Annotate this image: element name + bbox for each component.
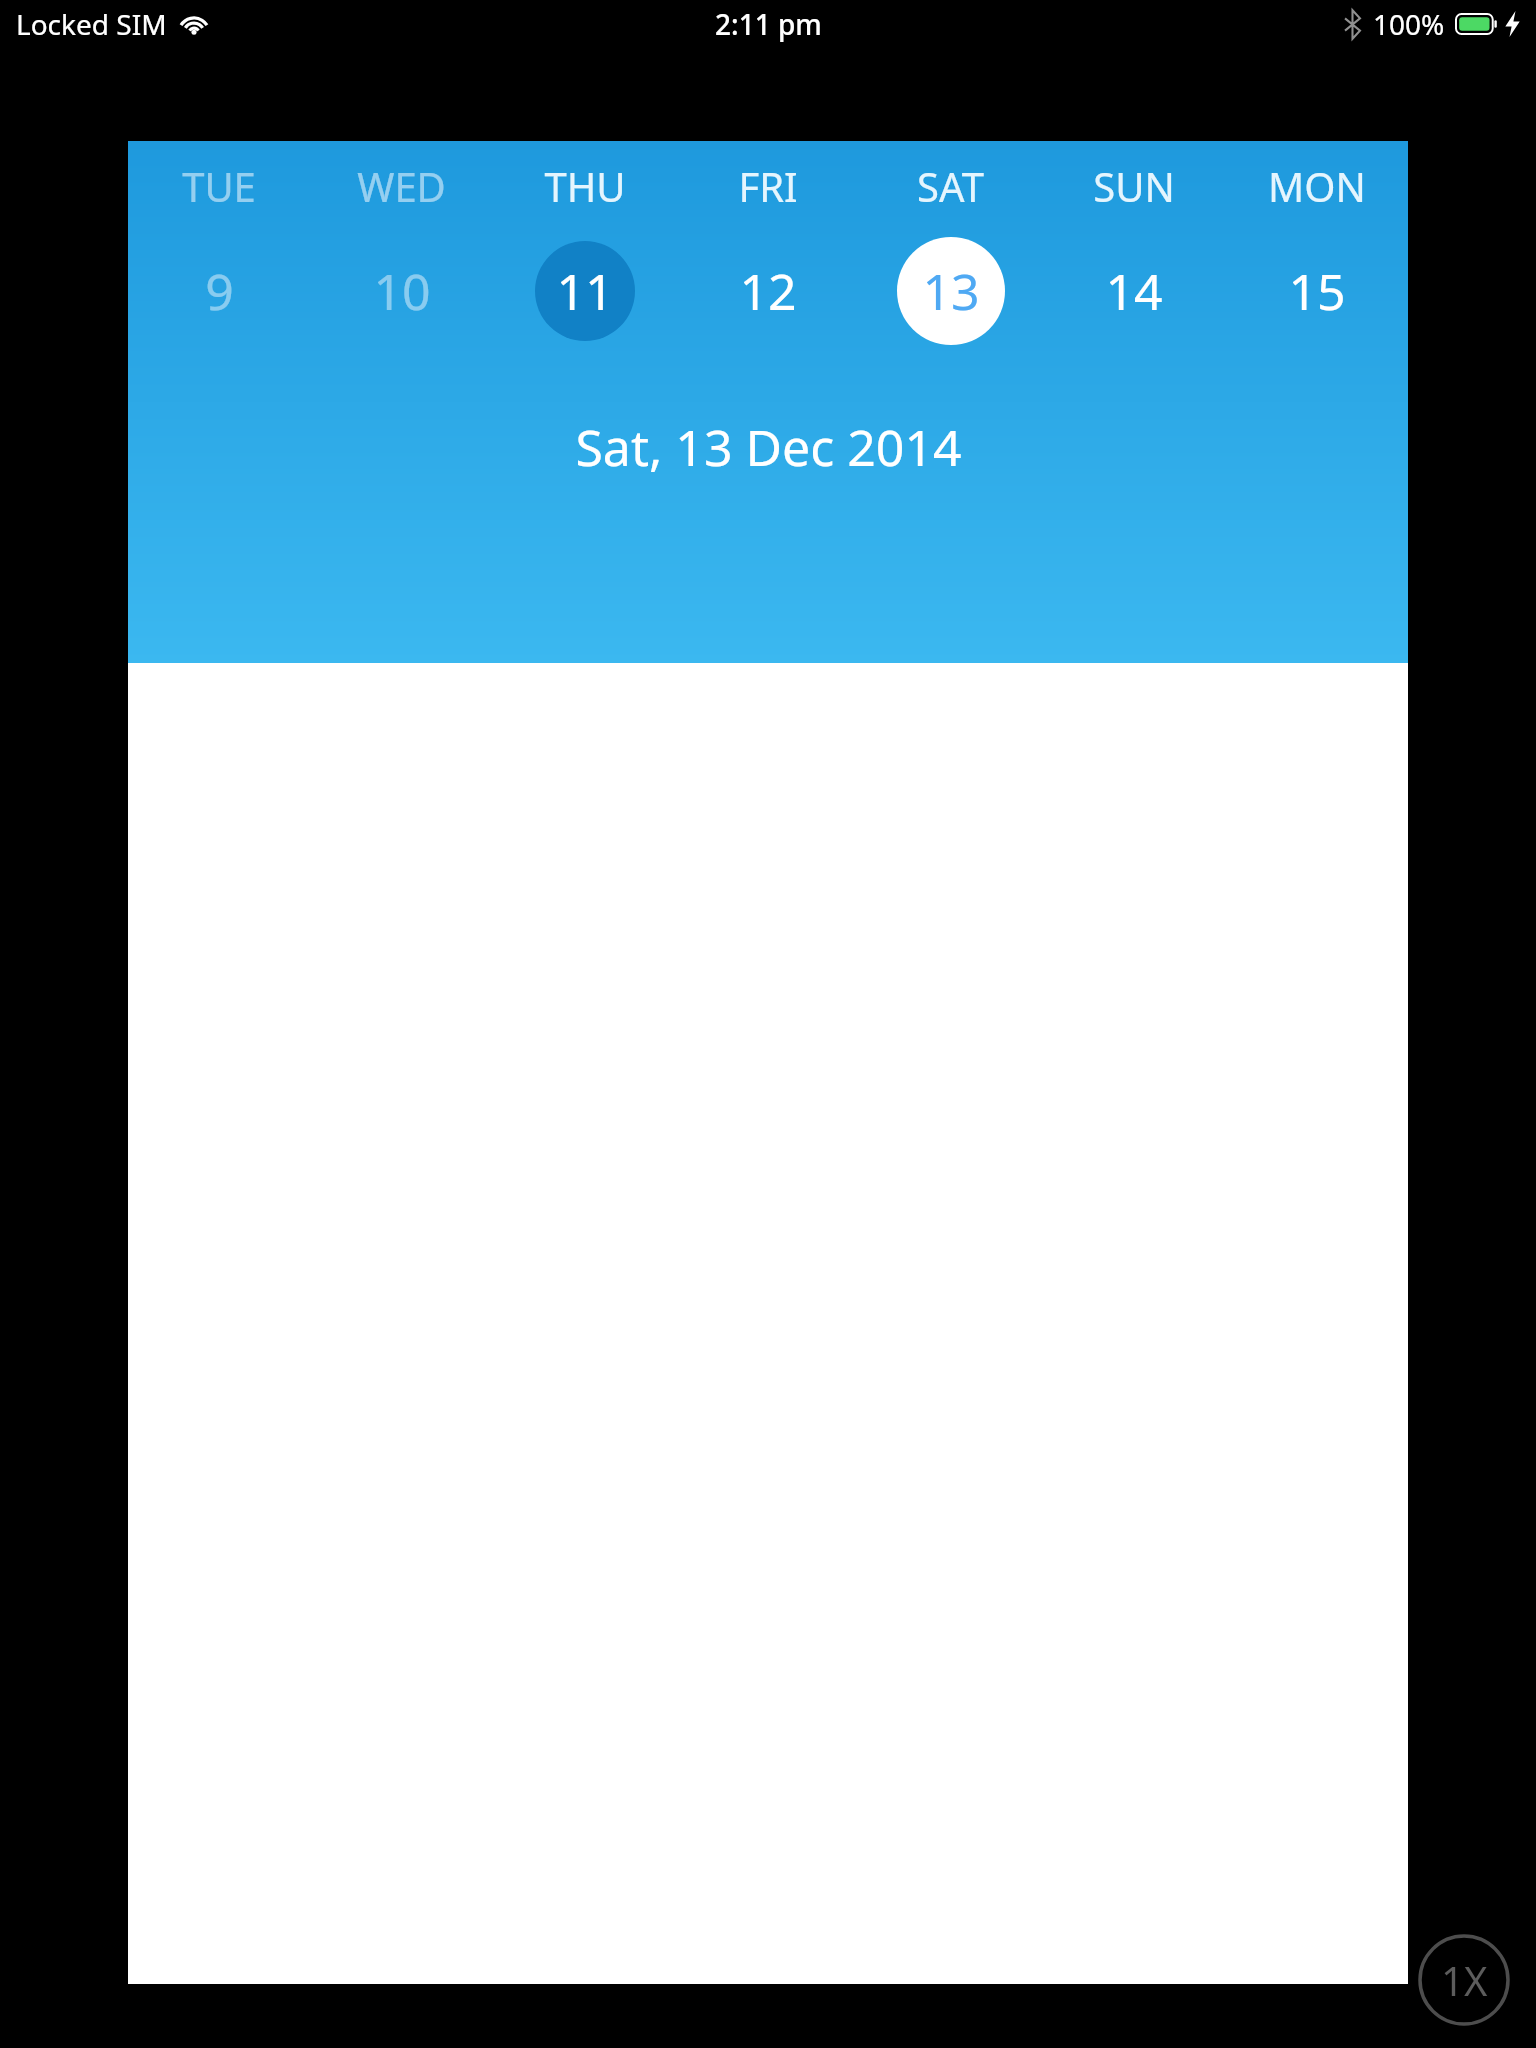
staticText: WED <box>357 159 446 213</box>
button[interactable]: SUN <box>1042 141 1225 347</box>
staticText: 1X <box>1441 1953 1488 2007</box>
button[interactable]: Zoom 1X <box>1418 1934 1510 2026</box>
staticText: Sat, 13 Dec 2014 <box>575 413 962 481</box>
staticText: Locked SIM <box>16 5 167 43</box>
staticText: 100% <box>1373 5 1445 43</box>
button[interactable]: TUE <box>128 141 310 347</box>
staticText: SAT <box>917 159 984 213</box>
button[interactable]: WED <box>310 141 493 347</box>
staticText: 13 <box>922 257 980 325</box>
staticText: 2:11 pm <box>715 5 822 43</box>
staticText: THU <box>544 159 626 213</box>
staticText: 14 <box>1105 257 1163 325</box>
staticText: 15 <box>1288 257 1346 325</box>
button[interactable]: MON <box>1225 141 1408 347</box>
staticText: 9 <box>205 257 234 325</box>
staticText: 10 <box>373 257 431 325</box>
button[interactable]: FRI <box>676 141 859 347</box>
staticText: SUN <box>1093 159 1175 213</box>
staticText: FRI <box>738 159 798 213</box>
button[interactable]: THU <box>493 141 676 347</box>
staticText: MON <box>1268 159 1366 213</box>
staticText: 11 <box>556 257 614 325</box>
staticText: TUE <box>182 159 256 213</box>
staticText: 12 <box>739 257 797 325</box>
button[interactable]: SAT <box>859 141 1042 347</box>
